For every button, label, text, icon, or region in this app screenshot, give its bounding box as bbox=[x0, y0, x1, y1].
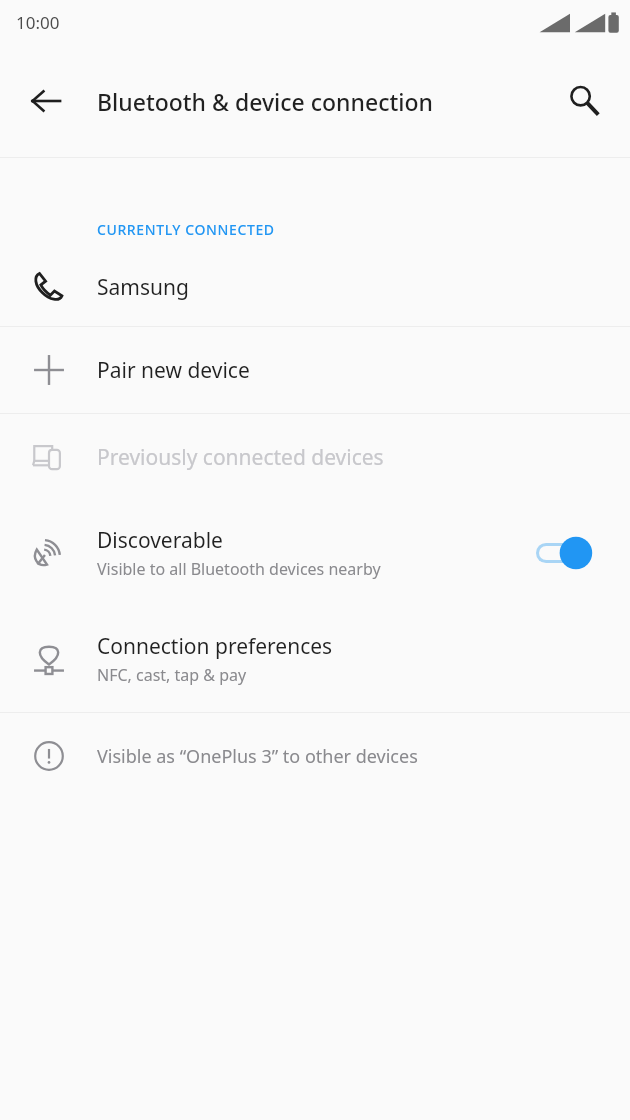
staticText: Connection preferences bbox=[97, 632, 333, 661]
staticText: Visible as “OnePlus 3” to other devices bbox=[97, 744, 418, 769]
button[interactable]: Connection preferences bbox=[0, 606, 630, 712]
button[interactable]: Discoverable bbox=[0, 500, 630, 606]
button[interactable]: Search bbox=[548, 65, 620, 137]
staticText: Visible to all Bluetooth devices nearby bbox=[97, 558, 381, 580]
button[interactable]: Discoverable toggle bbox=[536, 531, 606, 575]
button[interactable]: Pair new device bbox=[0, 327, 630, 413]
button[interactable]: Visible as “OnePlus 3” to other devices bbox=[0, 713, 630, 799]
staticText: NFC, cast, tap & pay bbox=[97, 664, 247, 686]
staticText: Previously connected devices bbox=[97, 443, 384, 472]
staticText: Discoverable bbox=[97, 526, 223, 555]
staticText: Bluetooth & device connection bbox=[97, 86, 433, 117]
button[interactable]: Samsung bbox=[0, 248, 630, 326]
staticText: Pair new device bbox=[97, 356, 250, 385]
button[interactable]: Previously connected devices bbox=[0, 414, 630, 500]
staticText: CURRENTLY CONNECTED bbox=[97, 220, 275, 239]
staticText: Samsung bbox=[97, 273, 189, 302]
button[interactable]: Back bbox=[10, 65, 82, 137]
staticText: 10:00 bbox=[16, 11, 60, 34]
